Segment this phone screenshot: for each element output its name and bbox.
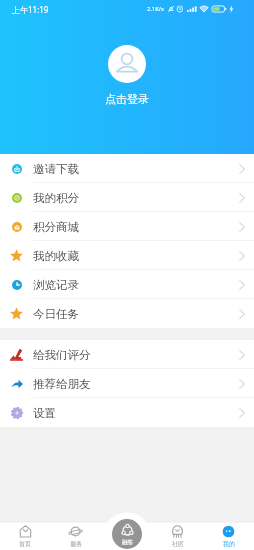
staticText: 2.1K/s bbox=[147, 5, 164, 13]
staticText: 我的 bbox=[223, 540, 235, 548]
button[interactable]: 设置 bbox=[0, 398, 254, 427]
button[interactable]: 服务 bbox=[50, 522, 101, 550]
button[interactable]: 我的 bbox=[203, 522, 254, 550]
button[interactable]: 我的收藏 bbox=[0, 241, 254, 270]
button[interactable]: 融客 bbox=[112, 519, 142, 549]
staticText: 设置 bbox=[33, 406, 56, 420]
staticText: 给我们评分 bbox=[33, 348, 91, 362]
staticText: 点击登录 bbox=[105, 92, 149, 106]
staticText: 我的积分 bbox=[33, 191, 79, 205]
button[interactable]: 邀请下载 bbox=[0, 154, 254, 183]
button[interactable]: 推荐给朋友 bbox=[0, 369, 254, 398]
staticText: 社区 bbox=[172, 540, 184, 548]
staticText: 融客 bbox=[122, 539, 133, 546]
staticText: 上午11:19 bbox=[12, 4, 49, 15]
button[interactable]: 给我们评分 bbox=[0, 340, 254, 369]
staticText: 今日任务 bbox=[33, 307, 79, 321]
button[interactable]: 点击登录 bbox=[105, 92, 149, 106]
button[interactable]: Login avatar bbox=[108, 45, 146, 83]
staticText: 服务 bbox=[70, 540, 82, 548]
staticText: 积分商城 bbox=[33, 220, 79, 234]
staticText: 浏览记录 bbox=[33, 278, 79, 292]
button[interactable]: 积分商城 bbox=[0, 212, 254, 241]
staticText: 我的收藏 bbox=[33, 249, 79, 263]
staticText: 推荐给朋友 bbox=[33, 377, 91, 391]
button[interactable]: 我的积分 bbox=[0, 183, 254, 212]
staticText: 邀请下载 bbox=[33, 162, 79, 176]
button[interactable]: 社区 bbox=[152, 522, 203, 550]
staticText: 首页 bbox=[19, 540, 31, 548]
button[interactable]: 今日任务 bbox=[0, 299, 254, 328]
button[interactable]: 浏览记录 bbox=[0, 270, 254, 299]
button[interactable]: 首页 bbox=[0, 522, 50, 550]
